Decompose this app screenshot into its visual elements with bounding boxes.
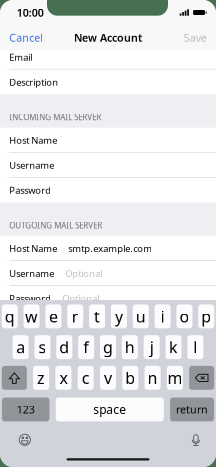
button[interactable]: j <box>144 335 160 359</box>
button[interactable]: Cancel <box>0 25 49 50</box>
staticText: f <box>83 336 89 358</box>
staticText: y <box>115 306 123 327</box>
button[interactable]: 123 <box>2 397 49 421</box>
button[interactable]: return <box>170 397 214 421</box>
button[interactable]: Password <box>0 178 216 203</box>
staticText: q <box>5 306 15 327</box>
button[interactable]: r <box>67 304 83 328</box>
button[interactable]: w <box>24 304 40 328</box>
button[interactable]: l <box>187 335 203 359</box>
staticText: h <box>125 336 135 358</box>
button[interactable]: Host Name <box>0 128 216 153</box>
staticText: Username <box>9 159 54 171</box>
staticText: s <box>38 336 46 358</box>
button[interactable]: Dictation <box>185 431 207 449</box>
staticText: e <box>49 306 58 327</box>
button[interactable]: c <box>78 366 94 390</box>
button[interactable]: s <box>34 335 50 359</box>
staticText: Save <box>184 30 207 45</box>
button[interactable]: f <box>78 335 94 359</box>
button[interactable]: space <box>56 397 164 421</box>
button[interactable]: Description <box>0 70 216 95</box>
staticText: b <box>125 367 135 388</box>
staticText: Host Name <box>9 134 57 146</box>
button[interactable]: e <box>45 304 61 328</box>
staticText: z <box>37 367 45 388</box>
button[interactable]: Email <box>0 45 216 70</box>
button[interactable]: Save <box>178 25 216 50</box>
staticText: Optional <box>65 267 102 279</box>
button[interactable]: y <box>111 304 127 328</box>
button[interactable]: u <box>133 304 149 328</box>
staticText: 10:00 <box>17 5 44 20</box>
staticText: Password <box>9 292 51 304</box>
button[interactable]: Delete <box>189 366 214 390</box>
button[interactable]: v <box>100 366 116 390</box>
button[interactable]: Username <box>0 261 216 286</box>
button[interactable]: d <box>56 335 72 359</box>
staticText: OUTGOING MAIL SERVER <box>9 220 102 231</box>
staticText: m <box>167 367 182 388</box>
button[interactable]: Emoji <box>14 431 36 449</box>
staticText: Optional <box>62 292 99 304</box>
button[interactable]: z <box>33 366 49 390</box>
staticText: Password <box>9 184 51 196</box>
staticText: Description <box>9 76 58 88</box>
button[interactable]: x <box>55 366 71 390</box>
staticText: space <box>93 401 126 417</box>
button[interactable]: m <box>167 366 183 390</box>
staticText: l <box>193 336 197 358</box>
staticText: Username <box>9 267 54 279</box>
staticText: j <box>150 336 154 358</box>
staticText: t <box>94 306 100 327</box>
button[interactable]: g <box>100 335 116 359</box>
staticText: Cancel <box>9 30 43 45</box>
staticText: r <box>72 306 79 327</box>
staticText: n <box>148 367 158 388</box>
staticText: a <box>16 336 25 358</box>
staticText: k <box>169 336 178 358</box>
button[interactable]: o <box>176 304 192 328</box>
staticText: g <box>103 336 113 358</box>
button[interactable]: Shift <box>2 366 27 390</box>
staticText: w <box>25 306 38 327</box>
staticText: Email <box>9 51 32 63</box>
button[interactable]: Password <box>0 286 216 311</box>
button[interactable]: k <box>165 335 181 359</box>
staticText: u <box>136 306 146 327</box>
button[interactable]: n <box>145 366 161 390</box>
staticText: c <box>82 367 90 388</box>
staticText: o <box>179 306 189 327</box>
staticText: Host Name <box>9 242 57 254</box>
staticText: p <box>201 306 211 327</box>
staticText: i <box>161 306 165 327</box>
button[interactable]: h <box>122 335 138 359</box>
staticText: v <box>104 367 112 388</box>
staticText: return <box>176 402 208 417</box>
button[interactable]: b <box>122 366 138 390</box>
staticText: smtp.example.com <box>68 242 152 254</box>
staticText: New Account <box>74 30 142 45</box>
button[interactable]: Username <box>0 153 216 178</box>
staticText: INCOMING MAIL SERVER <box>9 112 101 122</box>
staticText: d <box>59 336 69 358</box>
staticText: x <box>59 367 67 388</box>
staticText: 123 <box>17 402 35 417</box>
button[interactable]: q <box>2 304 18 328</box>
button[interactable]: a <box>13 335 29 359</box>
button[interactable]: p <box>198 304 214 328</box>
button[interactable]: i <box>155 304 171 328</box>
button[interactable]: t <box>89 304 105 328</box>
button[interactable]: Host Name <box>0 236 216 261</box>
